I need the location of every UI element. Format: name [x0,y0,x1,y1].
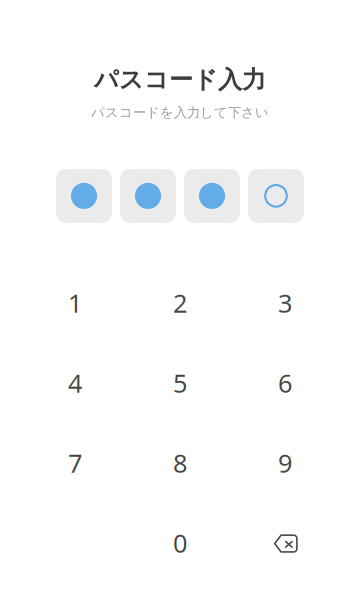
button[interactable]: Delete [232,503,337,583]
button[interactable]: 6 [232,343,337,423]
staticText: 4 [68,366,82,400]
staticText: 0 [173,526,187,560]
button[interactable]: 8 [127,423,232,503]
staticText: 2 [173,286,187,320]
staticText: パスコード入力 [94,65,266,94]
button[interactable]: 3 [232,263,337,343]
button[interactable]: 0 [127,503,232,583]
button[interactable]: 9 [232,423,337,503]
button[interactable]: 7 [22,423,127,503]
staticText: 1 [68,286,82,320]
button[interactable]: 1 [22,263,127,343]
staticText: 7 [68,446,82,480]
staticText: 9 [278,446,292,480]
button[interactable]: 2 [127,263,232,343]
button[interactable]: 5 [127,343,232,423]
staticText: 5 [173,366,187,400]
staticText: 8 [173,446,187,480]
staticText: 6 [278,366,292,400]
button[interactable]: 4 [22,343,127,423]
staticText: 3 [278,286,292,320]
staticText: パスコードを入力して下さい [91,104,269,121]
